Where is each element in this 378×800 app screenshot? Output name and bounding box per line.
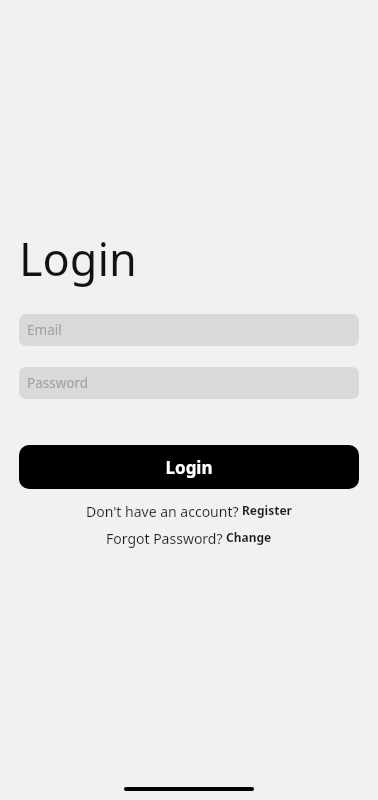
button[interactable]: Email (19, 314, 359, 346)
staticText: Register (242, 502, 292, 518)
staticText: Email (27, 321, 62, 339)
staticText: Login (19, 228, 137, 289)
staticText: Change (226, 529, 272, 545)
staticText: Don't have an account? (86, 502, 239, 521)
button[interactable]: Login (19, 445, 359, 489)
button[interactable]: Change (226, 529, 272, 545)
staticText: Password (27, 374, 89, 392)
button[interactable]: Password (19, 367, 359, 399)
button[interactable]: Register (242, 502, 292, 518)
staticText: Forgot Password? (106, 529, 223, 548)
staticText: Login (165, 456, 213, 479)
